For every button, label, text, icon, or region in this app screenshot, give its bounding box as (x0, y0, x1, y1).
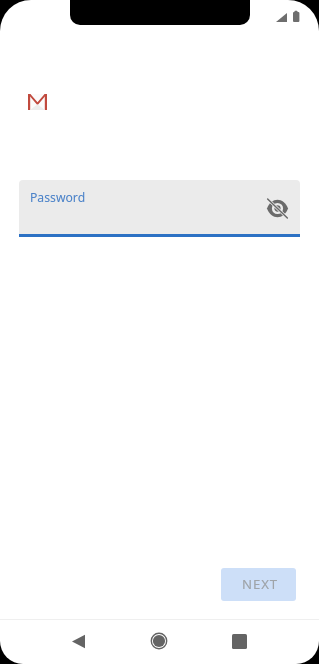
button[interactable]: NEXT (221, 568, 296, 601)
button[interactable]: Recents (219, 618, 259, 664)
button[interactable]: Back (58, 618, 98, 664)
staticText: Password (30, 189, 86, 206)
button[interactable]: Show password (263, 194, 291, 222)
button[interactable]: Home (139, 618, 179, 664)
button[interactable] (19, 180, 300, 237)
staticText: NEXT (242, 575, 279, 593)
